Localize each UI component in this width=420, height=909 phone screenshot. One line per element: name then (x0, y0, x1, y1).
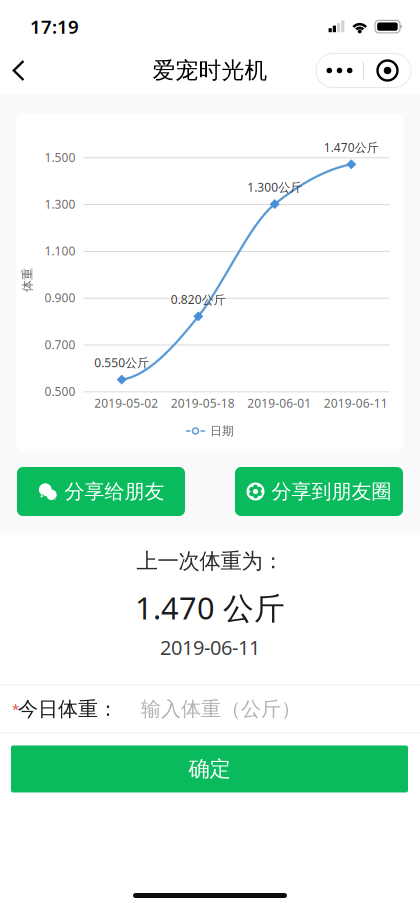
staticText: 2019-05-02 (94, 395, 158, 411)
staticText: 1.500 (44, 149, 75, 165)
button[interactable]: 确定 (11, 745, 408, 792)
staticText: 0.820公斤 (171, 291, 226, 307)
staticText: 1.100 (44, 243, 75, 259)
staticText: 1.300公斤 (247, 179, 302, 195)
staticText: 上一次体重为： (136, 548, 283, 574)
staticText: 17:19 (30, 14, 79, 39)
button[interactable]: 分享给朋友 (17, 467, 185, 516)
staticText: 分享给朋友 (64, 479, 164, 504)
button[interactable]: More options (316, 53, 363, 87)
staticText: 分享到朋友圈 (271, 479, 391, 504)
staticText: 0.700 (44, 336, 75, 352)
staticText: 体重 (15, 273, 39, 287)
button[interactable]: Close mini program (364, 53, 411, 87)
staticText: 1.300 (44, 196, 75, 212)
staticText: 0.900 (44, 290, 75, 306)
staticText: 2019-05-18 (171, 395, 235, 411)
button[interactable]: Back (0, 48, 37, 92)
staticText: 2019-06-01 (247, 395, 311, 411)
staticText: 2019-06-11 (160, 634, 260, 660)
staticText: 1.470 公斤 (135, 587, 285, 628)
staticText: * (12, 700, 19, 718)
staticText: 1.470公斤 (324, 139, 379, 155)
button[interactable]: 分享到朋友圈 (235, 467, 403, 516)
staticText: 输入体重（公斤） (141, 697, 301, 721)
staticText: 今日体重： (18, 697, 118, 721)
staticText: 0.550公斤 (94, 355, 149, 370)
staticText: 0.500 (44, 383, 75, 399)
staticText: 日期 (210, 424, 234, 438)
staticText: 2019-06-11 (324, 395, 388, 411)
staticText: 确定 (188, 756, 230, 782)
staticText: 爱宠时光机 (152, 57, 267, 84)
